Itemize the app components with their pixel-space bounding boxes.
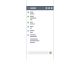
button[interactable]: Send <box>49 52 52 54</box>
button[interactable]: New <box>48 7 50 9</box>
button[interactable]: Menu <box>51 7 52 9</box>
button[interactable]: App <box>27 7 29 9</box>
button[interactable]: Search <box>46 7 47 9</box>
